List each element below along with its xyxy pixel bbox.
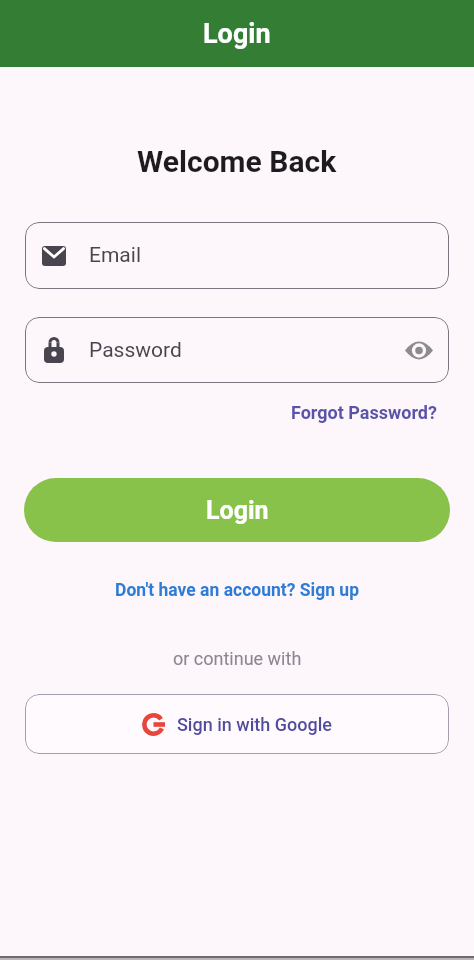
button[interactable]: Sign in with Google	[25, 694, 449, 754]
staticText: Don't have an account? Sign up	[115, 580, 360, 601]
button[interactable]	[405, 342, 433, 359]
staticText: Forgot Password?	[291, 402, 437, 423]
button[interactable]: Login	[24, 478, 450, 542]
staticText: Welcome Back	[137, 144, 337, 179]
staticText: Login	[206, 496, 269, 525]
staticText: Password	[89, 338, 182, 363]
staticText: Login	[203, 18, 271, 50]
button[interactable]: Don't have an account? Sign up	[115, 580, 360, 601]
button[interactable]: Password	[25, 317, 449, 383]
staticText: or continue with	[173, 648, 302, 669]
button[interactable]: Forgot Password?	[291, 402, 474, 423]
staticText: Sign in with Google	[177, 714, 332, 735]
button[interactable]: Email	[25, 222, 449, 289]
staticText: Email	[89, 243, 141, 268]
